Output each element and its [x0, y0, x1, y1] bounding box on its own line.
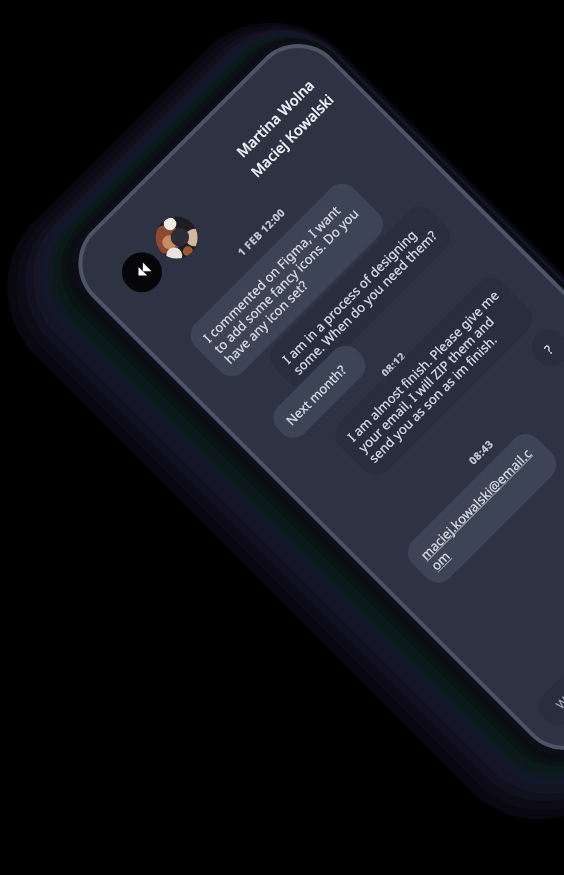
staticText: Next month? [282, 361, 350, 429]
staticText: Maciej Kowalski [246, 89, 338, 181]
button[interactable]: ? [524, 322, 564, 373]
staticText: ? [540, 341, 557, 358]
button[interactable]: I commented on Figma, I want to add some… [184, 177, 390, 383]
button[interactable]: I am almost finish. Please give me your … [328, 271, 539, 482]
staticText: I commented on Figma, I want to add some… [199, 192, 375, 368]
staticText: I am almost finish. Please give me your … [343, 286, 524, 467]
staticText: 08:43 [466, 437, 496, 467]
staticText: 08:12 [378, 349, 408, 380]
button[interactable]: Back [114, 244, 170, 300]
button[interactable]: Write a message [532, 498, 564, 732]
staticText: Write a message [552, 634, 564, 712]
button[interactable]: maciej.kowalski@email.com [401, 427, 563, 590]
button[interactable]: Next month? [266, 339, 372, 445]
staticText: 1 FEB 12:00 [235, 205, 288, 259]
staticText: Martina Wolna [232, 75, 318, 161]
staticText: I am in a process of designing some. Whe… [278, 215, 442, 378]
staticText: maciej.kowalski@email.com [416, 443, 548, 574]
button[interactable]: I am in a process of designing some. Whe… [263, 199, 457, 394]
